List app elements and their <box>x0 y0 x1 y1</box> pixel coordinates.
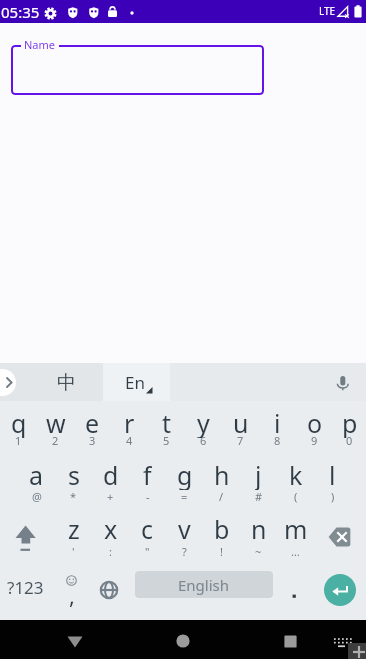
staticText: q <box>11 406 27 438</box>
staticText: 中 <box>57 371 76 395</box>
button[interactable]: e <box>74 401 111 456</box>
staticText: 6 <box>200 433 207 448</box>
staticText: e <box>85 406 100 438</box>
staticText: f <box>143 458 152 490</box>
staticText: * <box>70 489 77 504</box>
staticText: s <box>68 458 80 490</box>
button[interactable]: t <box>148 401 185 456</box>
button[interactable] <box>103 363 170 401</box>
button[interactable]: v <box>166 509 203 564</box>
staticText: y <box>197 406 210 438</box>
button[interactable]: y <box>185 401 222 456</box>
staticText: ' <box>72 544 75 559</box>
staticText: ! <box>220 544 223 559</box>
button[interactable]: ?123 <box>0 565 55 620</box>
button[interactable] <box>167 626 199 656</box>
button[interactable]: j <box>240 455 277 510</box>
button[interactable]: k <box>277 455 314 510</box>
staticText: + <box>107 489 114 504</box>
staticText: b <box>214 512 230 544</box>
button[interactable]: u <box>222 401 259 456</box>
staticText: m <box>284 512 308 544</box>
staticText: a <box>29 458 44 490</box>
staticText: r <box>124 406 135 438</box>
button[interactable]: l <box>314 455 351 510</box>
button[interactable] <box>92 565 129 620</box>
staticText: 9 <box>311 433 318 448</box>
staticText: k <box>289 458 303 490</box>
button[interactable]: m <box>277 509 314 564</box>
button[interactable]: z <box>55 509 92 564</box>
button[interactable] <box>55 565 92 620</box>
staticText: : <box>109 544 112 559</box>
button[interactable]: r <box>111 401 148 456</box>
staticText: # <box>255 489 263 504</box>
staticText: ? <box>182 544 187 559</box>
staticText: z <box>68 512 80 544</box>
button[interactable] <box>274 626 306 656</box>
button[interactable] <box>292 594 297 599</box>
button[interactable]: h <box>203 455 240 510</box>
button[interactable]: p <box>333 401 366 456</box>
button[interactable] <box>324 574 356 606</box>
staticText: c <box>141 512 154 544</box>
staticText: u <box>233 406 249 438</box>
staticText: - <box>146 489 150 504</box>
staticText: LTE <box>319 4 336 18</box>
staticText: En <box>125 371 145 394</box>
staticText: 05:35 <box>1 2 40 22</box>
button[interactable]: English <box>135 571 273 598</box>
staticText: / <box>219 489 224 504</box>
staticText: ) <box>331 489 335 504</box>
staticText: l <box>329 458 336 490</box>
button[interactable]: i <box>259 401 296 456</box>
button[interactable] <box>11 45 264 95</box>
button[interactable]: s <box>55 455 92 510</box>
staticText: d <box>103 458 119 490</box>
staticText: g <box>177 458 193 490</box>
button[interactable]: x <box>92 509 129 564</box>
staticText: , <box>69 580 75 610</box>
staticText: o <box>307 406 323 438</box>
staticText: h <box>214 458 230 490</box>
staticText: w <box>46 406 66 438</box>
staticText: x <box>104 512 118 544</box>
staticText: 1 <box>15 433 22 448</box>
staticText: 5 <box>163 433 170 448</box>
button[interactable]: f <box>129 455 166 510</box>
staticText: t <box>162 406 172 438</box>
staticText: 8 <box>274 433 281 448</box>
staticText: ( <box>294 489 298 504</box>
button[interactable] <box>59 626 91 656</box>
staticText: English <box>178 575 230 595</box>
staticText: ?123 <box>7 576 44 599</box>
staticText: v <box>178 512 191 544</box>
staticText: n <box>251 512 267 544</box>
staticText: 3 <box>89 433 96 448</box>
staticText: … <box>291 544 300 559</box>
button[interactable]: o <box>296 401 333 456</box>
button[interactable]: n <box>240 509 277 564</box>
button[interactable]: b <box>203 509 240 564</box>
button[interactable] <box>311 509 366 564</box>
button[interactable]: d <box>92 455 129 510</box>
button[interactable] <box>0 369 16 396</box>
staticText: @ <box>32 489 42 504</box>
staticText: Name <box>24 37 56 52</box>
button[interactable] <box>332 634 356 650</box>
button[interactable]: w <box>37 401 74 456</box>
button[interactable]: c <box>129 509 166 564</box>
staticText: " <box>145 544 150 559</box>
staticText: 7 <box>237 433 244 448</box>
button[interactable]: a <box>18 455 55 510</box>
staticText: 4 <box>126 433 133 448</box>
staticText: j <box>255 458 262 490</box>
button[interactable] <box>348 643 366 659</box>
button[interactable]: q <box>0 401 37 456</box>
staticText: i <box>274 406 281 438</box>
staticText: 2 <box>52 433 59 448</box>
staticText: = <box>181 489 188 504</box>
staticText: ~ <box>255 544 262 559</box>
button[interactable] <box>0 509 55 564</box>
button[interactable]: g <box>166 455 203 510</box>
